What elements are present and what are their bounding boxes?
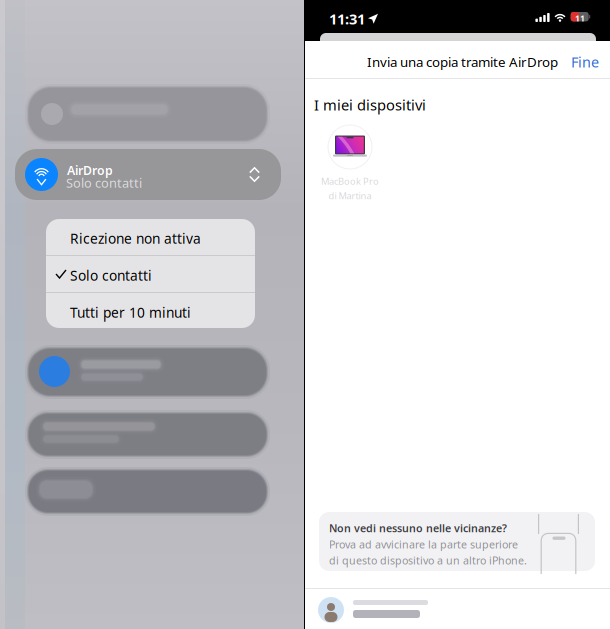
- button[interactable]: MacBook Pro: [319, 125, 381, 205]
- button[interactable]: Tutti per 10 minuti: [46, 293, 255, 328]
- button[interactable]: Martina Oliva: [318, 597, 448, 629]
- staticText: Solo contatti: [70, 266, 152, 285]
- button[interactable]: AirDrop: [15, 149, 281, 200]
- staticText: 11:31: [329, 9, 365, 28]
- staticText: di Martina: [328, 189, 371, 202]
- staticText: Ricezione non attiva: [70, 229, 201, 248]
- staticText: Solo contatti: [66, 174, 142, 191]
- button[interactable]: Fine: [565, 46, 605, 78]
- staticText: Invia una copia tramite AirDrop: [367, 53, 558, 71]
- staticText: AirDrop: [67, 162, 113, 179]
- staticText: 11: [575, 12, 585, 24]
- button[interactable]: Solo contatti: [46, 256, 255, 292]
- staticText: Prova ad avvicinare la parte superiore: [329, 537, 518, 551]
- staticText: Non vedi nessuno nelle vicinanze?: [329, 521, 507, 535]
- staticText: di questo dispositivo a un altro iPhone.: [329, 553, 527, 567]
- staticText: Tutti per 10 minuti: [70, 303, 191, 322]
- staticText: I miei dispositivi: [314, 95, 426, 114]
- staticText: MacBook Pro: [321, 175, 379, 187]
- button[interactable]: Ricezione non attiva: [46, 219, 255, 255]
- staticText: Fine: [571, 52, 599, 72]
